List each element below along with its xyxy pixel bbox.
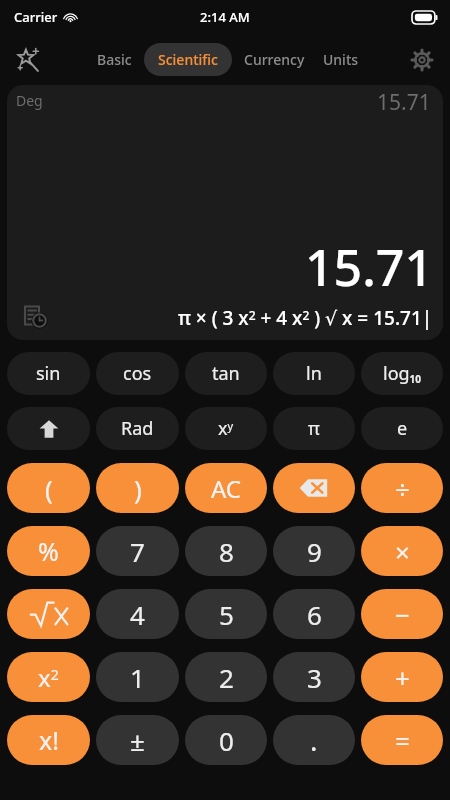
staticText: 4	[130, 597, 145, 632]
button[interactable]: π	[273, 407, 355, 450]
button[interactable]: Currency	[238, 43, 311, 76]
button[interactable]: sin	[7, 352, 90, 395]
button[interactable]: Basic	[91, 43, 138, 76]
button[interactable]: tan	[185, 352, 267, 395]
staticText: cos	[123, 361, 152, 386]
button[interactable]: log10	[361, 352, 443, 395]
staticText: 15.71	[305, 233, 433, 301]
staticText: −	[395, 597, 410, 632]
button[interactable]: Backspace	[273, 463, 355, 513]
staticText: x2	[38, 661, 59, 694]
button[interactable]: xy	[185, 407, 267, 450]
staticText: tan	[212, 361, 240, 386]
button[interactable]: Units	[317, 43, 365, 76]
button[interactable]: 3	[273, 652, 355, 702]
staticText: (	[45, 471, 53, 506]
button[interactable]: )	[96, 463, 179, 513]
button[interactable]: ln	[273, 352, 355, 395]
staticText: 2	[219, 660, 234, 695]
staticText: %	[38, 534, 59, 568]
button[interactable]: =	[361, 715, 443, 765]
button[interactable]: Rad	[96, 407, 179, 450]
button[interactable]: x!	[7, 715, 90, 765]
button[interactable]	[7, 589, 90, 639]
button[interactable]: 8	[185, 526, 267, 576]
button[interactable]: ÷	[361, 463, 443, 513]
staticText: .	[310, 721, 318, 759]
staticText: 7	[130, 534, 145, 569]
button[interactable]: 1	[96, 652, 179, 702]
button[interactable]: e	[361, 407, 443, 450]
staticText: Carrier	[14, 8, 58, 26]
staticText: 0	[219, 723, 234, 758]
staticText: 3	[307, 660, 322, 695]
staticText: 2:14 AM	[200, 8, 250, 26]
button[interactable]: Shift	[7, 407, 90, 450]
button[interactable]: −	[361, 589, 443, 639]
button[interactable]: +	[361, 652, 443, 702]
button[interactable]: .	[273, 715, 355, 765]
button[interactable]: %	[7, 526, 90, 576]
staticText: 1	[130, 660, 145, 695]
button[interactable]: Scientific	[144, 43, 232, 76]
staticText: e	[397, 416, 408, 441]
button[interactable]: cos	[96, 352, 179, 395]
button[interactable]: History	[19, 300, 49, 330]
button[interactable]: 5	[185, 589, 267, 639]
staticText: +	[395, 660, 410, 695]
button[interactable]: ±	[96, 715, 179, 765]
button[interactable]: AC	[185, 463, 267, 513]
staticText: ÷	[395, 471, 410, 506]
staticText: ±	[130, 723, 145, 758]
button[interactable]: 4	[96, 589, 179, 639]
staticText: Rad	[121, 416, 154, 441]
button[interactable]: x2	[7, 652, 90, 702]
staticText: Deg	[16, 91, 43, 110]
button[interactable]: 0	[185, 715, 267, 765]
staticText: Scientific	[158, 50, 218, 69]
staticText: Basic	[97, 50, 132, 69]
staticText: Units	[323, 50, 359, 69]
staticText: xy	[218, 416, 234, 441]
staticText: π	[308, 416, 320, 441]
button[interactable]: 2	[185, 652, 267, 702]
staticText: )	[134, 471, 142, 506]
staticText: log10	[383, 361, 422, 386]
button[interactable]: Magic	[8, 40, 48, 80]
staticText: Currency	[244, 50, 305, 69]
staticText: 15.71	[377, 88, 431, 117]
staticText: 6	[307, 597, 322, 632]
staticText: sin	[36, 361, 61, 386]
button[interactable]: 7	[96, 526, 179, 576]
staticText: ln	[306, 361, 322, 386]
button[interactable]: 6	[273, 589, 355, 639]
button[interactable]: Settings	[402, 40, 442, 80]
staticText: AC	[211, 472, 242, 505]
staticText: 9	[307, 534, 322, 569]
staticText: =	[395, 723, 410, 758]
staticText: x!	[39, 723, 59, 757]
staticText: ×	[395, 534, 410, 569]
staticText: 8	[219, 534, 234, 569]
staticText: 5	[219, 597, 234, 632]
button[interactable]: ×	[361, 526, 443, 576]
button[interactable]: (	[7, 463, 90, 513]
button[interactable]: 9	[273, 526, 355, 576]
staticText: π × ( 3 x2 + 4 x2 ) √ x = 15.71|	[178, 305, 433, 331]
